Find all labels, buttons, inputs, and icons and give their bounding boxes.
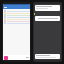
button[interactable] xyxy=(3,22,30,24)
button[interactable] xyxy=(3,12,30,14)
button[interactable] xyxy=(3,18,30,20)
button[interactable] xyxy=(35,16,60,21)
button[interactable] xyxy=(35,54,60,59)
button[interactable]: Status indicator xyxy=(33,2,62,62)
button[interactable]: App bar xyxy=(2,2,31,62)
button[interactable]: App bar xyxy=(3,5,30,9)
button[interactable]: Create xyxy=(4,56,8,60)
button[interactable] xyxy=(35,5,60,11)
button[interactable] xyxy=(3,20,30,22)
button[interactable] xyxy=(3,10,30,12)
button[interactable] xyxy=(3,14,30,16)
button[interactable] xyxy=(3,16,30,18)
